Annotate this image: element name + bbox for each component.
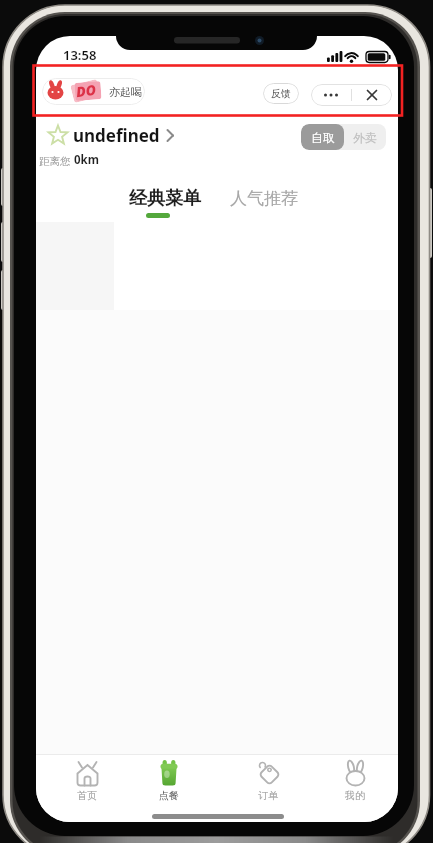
staticText: 外卖 bbox=[353, 130, 377, 145]
staticText: 首页 bbox=[77, 789, 97, 802]
button[interactable]: DO bbox=[42, 78, 145, 105]
staticText: 13:58 bbox=[63, 46, 97, 64]
staticText: 经典菜单 bbox=[129, 187, 201, 210]
staticText: 距离您 bbox=[39, 154, 74, 168]
staticText: DO bbox=[75, 80, 97, 101]
button[interactable] bbox=[311, 84, 351, 106]
button[interactable]: 首页 bbox=[59, 760, 115, 812]
staticText: 自取 bbox=[311, 130, 335, 145]
button[interactable]: undefined bbox=[47, 120, 175, 150]
staticText: 0km bbox=[74, 152, 99, 168]
button[interactable] bbox=[352, 84, 392, 106]
button[interactable]: 外卖 bbox=[344, 124, 386, 150]
button[interactable]: 人气推荐 bbox=[224, 184, 314, 218]
staticText: 人气推荐 bbox=[230, 188, 298, 209]
button[interactable]: 订单 bbox=[240, 760, 296, 812]
button[interactable]: 点餐 bbox=[141, 760, 197, 812]
staticText: 亦起喝 bbox=[109, 85, 142, 99]
staticText: 反馈 bbox=[271, 87, 291, 100]
button[interactable]: 我的 bbox=[327, 760, 383, 812]
staticText: 我的 bbox=[345, 789, 365, 802]
button[interactable]: 反馈 bbox=[263, 83, 299, 104]
button[interactable]: 经典菜单 bbox=[116, 184, 221, 218]
staticText: undefined bbox=[73, 124, 160, 147]
staticText: 订单 bbox=[258, 789, 278, 802]
staticText: 点餐 bbox=[159, 789, 179, 802]
button[interactable]: 自取 bbox=[301, 124, 344, 150]
